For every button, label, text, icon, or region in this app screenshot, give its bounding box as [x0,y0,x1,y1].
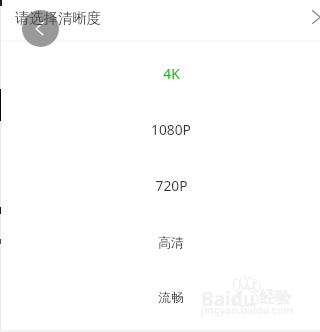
staticText: 4K [163,64,180,83]
staticText: jingyan.baidu.com [201,303,293,317]
staticText: 高清 [158,235,184,251]
button[interactable]: More [304,5,320,29]
button[interactable]: 高清 [0,213,320,269]
button[interactable]: Back [22,10,59,47]
staticText: 经验 [259,288,291,308]
button[interactable]: 4K [0,45,320,101]
button[interactable]: 流畅 [0,269,320,325]
button[interactable]: 1080P [0,101,320,157]
staticText: 请选择清晰度 [15,9,101,27]
staticText: 流畅 [158,290,184,306]
staticText: 720P [155,176,188,195]
button[interactable]: 720P [0,157,320,213]
staticText: Baidu [201,286,256,312]
staticText: 1080P [151,120,191,139]
